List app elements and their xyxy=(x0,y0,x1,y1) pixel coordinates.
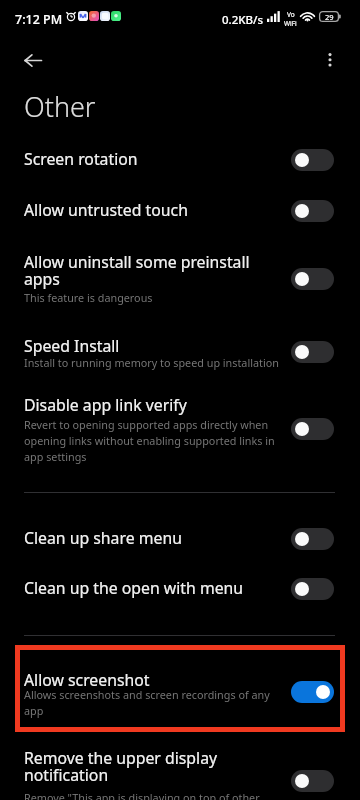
button[interactable]: Off xyxy=(291,268,334,290)
button[interactable]: Disable app link verify xyxy=(0,384,360,480)
button[interactable]: More options xyxy=(312,42,348,78)
button[interactable]: Clean up share menu xyxy=(0,517,360,567)
button[interactable]: Off xyxy=(291,200,334,222)
staticText: Clean up share menu xyxy=(24,531,182,548)
staticText: WiFi xyxy=(284,19,297,28)
staticText: Vo xyxy=(287,10,295,19)
staticText: Remove "This app is displaying on top of… xyxy=(24,789,260,800)
staticText: Revert to opening supported apps directl… xyxy=(24,416,280,464)
button[interactable]: Speed Install xyxy=(0,325,360,384)
button[interactable]: Off xyxy=(291,770,334,792)
button[interactable]: On xyxy=(291,681,334,703)
staticText: Allows screenshots and screen recordings… xyxy=(24,686,280,718)
staticText: This feature is dangerous xyxy=(24,289,153,305)
staticText: Install to running memory to speed up in… xyxy=(24,354,279,370)
staticText: Disable app link verify xyxy=(24,398,187,415)
button[interactable]: Off xyxy=(291,418,334,440)
button[interactable]: Allow untrusted touch xyxy=(0,189,360,241)
staticText: Allow untrusted touch xyxy=(24,203,188,220)
button[interactable]: Off xyxy=(291,578,334,600)
button[interactable]: Screen rotation xyxy=(0,138,360,189)
staticText: 29 xyxy=(325,12,334,22)
button[interactable]: Clean up the open with menu xyxy=(0,567,360,630)
staticText: Allow uninstall some preinstall apps xyxy=(24,255,280,289)
button[interactable]: Off xyxy=(291,341,334,363)
button[interactable]: Remove the upper display notification xyxy=(0,737,360,800)
button[interactable]: Off xyxy=(291,528,334,550)
staticText: Clean up the open with menu xyxy=(24,581,244,598)
staticText: Screen rotation xyxy=(24,152,138,169)
button[interactable]: Off xyxy=(291,149,334,171)
staticText: 0.2KB/s xyxy=(222,12,264,28)
staticText: 7:12 PM xyxy=(15,11,63,28)
staticText: Other xyxy=(24,88,96,125)
button[interactable]: Allow screenshot xyxy=(0,659,360,732)
staticText: Allow screenshot xyxy=(24,673,150,690)
button[interactable]: Allow uninstall some preinstall apps xyxy=(0,241,360,325)
staticText: Speed Install xyxy=(24,339,120,356)
button[interactable]: Back xyxy=(15,42,51,78)
staticText: Remove the upper display notification xyxy=(24,751,280,785)
